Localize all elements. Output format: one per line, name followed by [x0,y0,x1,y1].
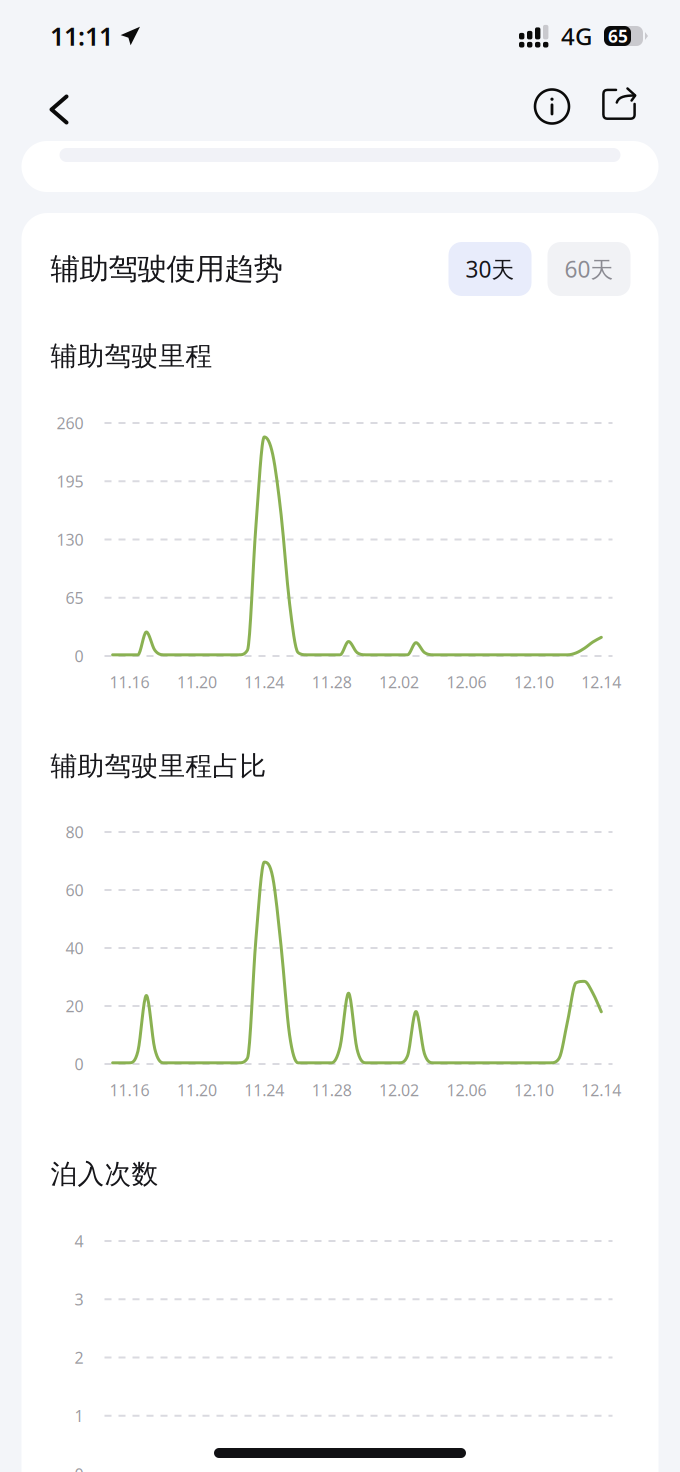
staticText: 60 [65,879,83,901]
staticText: 泊入次数 [50,1158,158,1190]
staticText: 12.10 [514,1079,554,1101]
staticText: 辅助驾驶里程占比 [50,750,266,782]
staticText: 0 [74,1053,83,1075]
staticText: 11.20 [177,1079,217,1101]
staticText: 65 [608,24,628,47]
staticText: 12.02 [379,1079,419,1101]
staticText: 11:11 [50,19,113,53]
staticText: 12.06 [446,1079,486,1101]
staticText: 12.14 [581,671,621,693]
button[interactable]: Back [34,77,84,135]
staticText: 20 [65,995,83,1017]
staticText: 4 [74,1230,83,1252]
staticText: 0 [74,645,83,667]
staticText: 130 [56,529,83,550]
button[interactable]: 30天 [448,242,531,296]
staticText: 辅助驾驶里程 [50,340,212,372]
staticText: 195 [56,471,83,492]
staticText: 12.06 [446,671,486,693]
staticText: 60天 [564,254,613,284]
staticText: 0 [74,1463,83,1472]
staticText: 12.14 [581,1079,621,1101]
staticText: 12.10 [514,671,554,693]
staticText: 80 [65,821,83,843]
staticText: 11.24 [244,1079,284,1101]
staticText: 11.28 [312,671,352,693]
staticText: 30天 [465,254,514,284]
staticText: 260 [56,412,83,434]
staticText: 11.16 [109,671,149,693]
staticText: 11.20 [177,671,217,693]
staticText: 4G [561,20,592,52]
staticText: 2 [74,1347,83,1368]
staticText: 65 [65,587,83,608]
staticText: 1 [74,1405,83,1426]
staticText: 11.24 [244,671,284,693]
staticText: 3 [74,1289,83,1310]
button[interactable]: Share [585,77,646,135]
staticText: 11.16 [109,1079,149,1101]
button[interactable]: Info [527,76,585,136]
staticText: 11.28 [312,1079,352,1101]
staticText: 12.02 [379,671,419,693]
button[interactable]: 60天 [547,242,630,296]
staticText: 40 [65,937,83,959]
staticText: 辅助驾驶使用趋势 [50,251,282,287]
